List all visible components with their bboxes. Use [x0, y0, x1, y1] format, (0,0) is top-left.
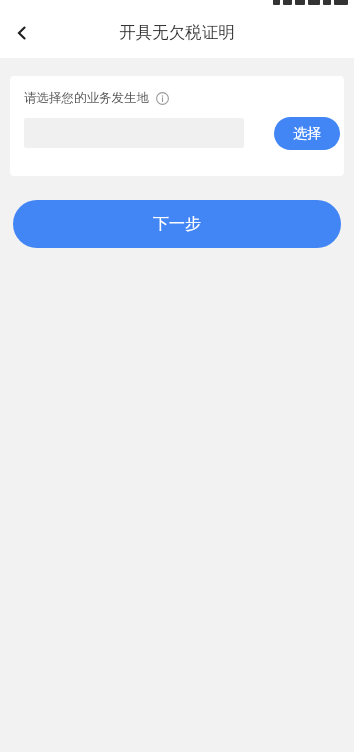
button[interactable]: 返回	[0, 11, 44, 55]
staticText: 开具无欠税证明	[119, 22, 235, 43]
button[interactable]: 下一步	[13, 200, 341, 248]
button[interactable]: 说明	[155, 91, 170, 106]
button[interactable]: 选择	[274, 117, 340, 150]
staticText: 选择	[293, 125, 321, 143]
staticText: 下一步	[153, 214, 201, 234]
staticText: 请选择您的业务发生地	[24, 90, 149, 106]
